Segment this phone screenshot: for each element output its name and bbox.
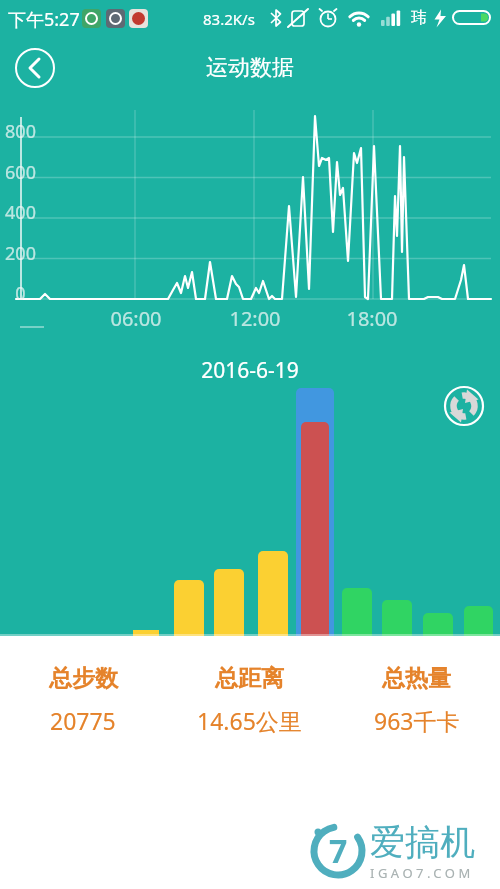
- button[interactable]: [443, 385, 485, 427]
- staticText: IGAO7.COM: [370, 864, 474, 882]
- staticText: 800: [5, 119, 36, 144]
- staticText: 7: [329, 829, 348, 873]
- staticText: 400: [5, 200, 36, 225]
- staticText: 0: [15, 281, 26, 306]
- staticText: 爱搞机: [370, 820, 475, 864]
- staticText: 200: [5, 241, 36, 266]
- staticText: 玮: [411, 8, 427, 28]
- button[interactable]: 总热量: [333, 664, 500, 736]
- staticText: 运动数据: [206, 54, 294, 82]
- staticText: 18:00: [346, 305, 398, 332]
- button[interactable]: [15, 48, 55, 88]
- staticText: 12:00: [229, 305, 281, 332]
- staticText: 下午5:27: [8, 7, 80, 32]
- staticText: 06:00: [110, 305, 162, 332]
- staticText: 600: [5, 160, 36, 185]
- staticText: 83.2K/s: [203, 9, 255, 29]
- staticText: 2016-6-19: [201, 356, 299, 385]
- staticText: 总距离: [215, 664, 284, 693]
- staticText: 14.65公里: [197, 705, 302, 736]
- button[interactable]: 总步数: [0, 664, 166, 736]
- staticText: 总热量: [382, 664, 451, 693]
- staticText: 20775: [50, 705, 116, 736]
- button[interactable]: 总距离: [166, 664, 333, 736]
- staticText: 963千卡: [374, 705, 460, 736]
- staticText: 总步数: [49, 664, 118, 693]
